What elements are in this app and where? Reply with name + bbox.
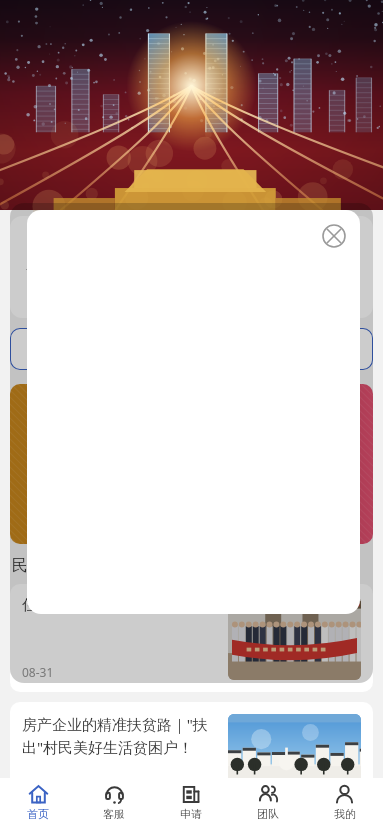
button[interactable]: 客服 <box>76 778 152 827</box>
staticText: 首页 <box>27 807 49 821</box>
button[interactable]: 关闭 <box>27 210 360 614</box>
staticText: 住房公积金助力精准扶贫！ <box>22 596 202 615</box>
button[interactable]: 立即申请 <box>10 328 373 370</box>
staticText: 08-31 <box>22 664 54 680</box>
button[interactable]: 额度(元) <box>10 216 373 318</box>
button[interactable]: 关闭 <box>318 220 350 252</box>
staticText: 团队 <box>257 807 279 821</box>
staticText: 申请 <box>180 807 202 821</box>
staticText: 额度(元) <box>26 258 73 276</box>
button[interactable]: 我的 <box>306 778 383 827</box>
button[interactable]: 住房公积金助力精准扶贫！ <box>10 584 373 692</box>
staticText: 房产企业的精准扶贫路｜"扶出"村民美好生活贫困户！ <box>22 714 218 758</box>
staticText: 民生资讯 <box>12 556 76 576</box>
button[interactable]: 团队 <box>229 778 306 827</box>
button[interactable]: 房产企业的精准扶贫路｜"扶出"村民美好生活贫困户！ <box>10 702 373 810</box>
button[interactable]: 申请 <box>152 778 229 827</box>
button[interactable] <box>10 384 373 544</box>
staticText: 客服 <box>103 807 125 821</box>
staticText: 08-30 <box>22 782 54 798</box>
staticText: 我的 <box>334 807 356 821</box>
button[interactable]: 首页 <box>0 778 76 827</box>
